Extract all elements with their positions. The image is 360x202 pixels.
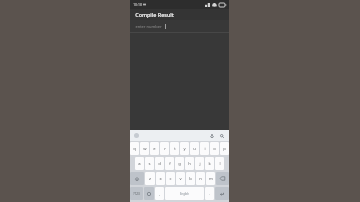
staticText: q <box>133 146 136 152</box>
button[interactable]: h <box>185 157 194 170</box>
button[interactable]: r <box>160 142 169 155</box>
staticText: e <box>153 146 156 152</box>
button[interactable]: g <box>175 157 184 170</box>
button[interactable]: q <box>130 142 139 155</box>
staticText: l <box>219 161 221 167</box>
button[interactable]: s <box>145 157 154 170</box>
button[interactable]: ?123 <box>130 187 143 200</box>
staticText: Compile Result <box>135 11 174 18</box>
button[interactable]: j <box>195 157 204 170</box>
staticText: t <box>174 146 176 152</box>
staticText: . <box>209 191 210 196</box>
button[interactable]: m <box>206 172 215 185</box>
staticText: s <box>148 161 151 167</box>
button[interactable]: Google <box>134 133 139 138</box>
button[interactable]: o <box>210 142 219 155</box>
staticText: ?123 <box>133 192 140 196</box>
staticText: x <box>159 176 162 182</box>
staticText: c <box>169 176 172 182</box>
button[interactable]: enter number <box>135 23 229 30</box>
button[interactable]: a <box>135 157 144 170</box>
staticText: y <box>183 146 186 152</box>
staticText: b <box>189 176 192 182</box>
button[interactable]: d <box>155 157 164 170</box>
staticText: o <box>213 146 216 152</box>
button[interactable]: y <box>180 142 189 155</box>
staticText: d <box>158 161 161 167</box>
staticText: j <box>199 161 201 167</box>
staticText: u <box>193 146 196 152</box>
staticText: k <box>208 161 211 167</box>
button[interactable]: z <box>145 172 155 185</box>
button[interactable]: k <box>205 157 214 170</box>
staticText: a <box>138 161 141 167</box>
staticText: English <box>180 192 189 196</box>
button[interactable]: Emoji <box>144 187 154 200</box>
staticText: z <box>149 176 151 182</box>
staticText: , <box>159 191 160 196</box>
button[interactable]: Search <box>219 133 225 139</box>
button[interactable]: c <box>166 172 175 185</box>
staticText: r <box>164 146 166 152</box>
button[interactable]: l <box>215 157 224 170</box>
staticText: p <box>223 146 226 152</box>
button[interactable]: u <box>190 142 199 155</box>
staticText: m <box>209 176 213 182</box>
button[interactable]: English <box>165 187 204 200</box>
button[interactable]: w <box>140 142 149 155</box>
button[interactable]: Shift <box>130 172 144 185</box>
staticText: i <box>204 146 206 152</box>
staticText: g <box>178 161 181 167</box>
button[interactable]: Backspace <box>216 172 229 185</box>
button[interactable]: i <box>200 142 209 155</box>
button[interactable]: e <box>150 142 159 155</box>
staticText: enter number <box>135 24 162 29</box>
button[interactable]: n <box>196 172 205 185</box>
button[interactable]: t <box>170 142 179 155</box>
button[interactable]: Enter <box>215 187 229 200</box>
staticText: w <box>143 146 147 152</box>
button[interactable]: x <box>156 172 165 185</box>
button[interactable]: . <box>205 187 214 200</box>
staticText: f <box>169 161 171 167</box>
staticText: v <box>179 176 182 182</box>
button[interactable]: v <box>176 172 185 185</box>
button[interactable]: , <box>155 187 164 200</box>
button[interactable]: p <box>220 142 229 155</box>
staticText: 10:18 <box>133 2 142 7</box>
staticText: h <box>188 161 191 167</box>
button[interactable]: f <box>165 157 174 170</box>
button[interactable]: Voice input <box>209 133 215 139</box>
staticText: n <box>199 176 202 182</box>
button[interactable]: b <box>186 172 195 185</box>
